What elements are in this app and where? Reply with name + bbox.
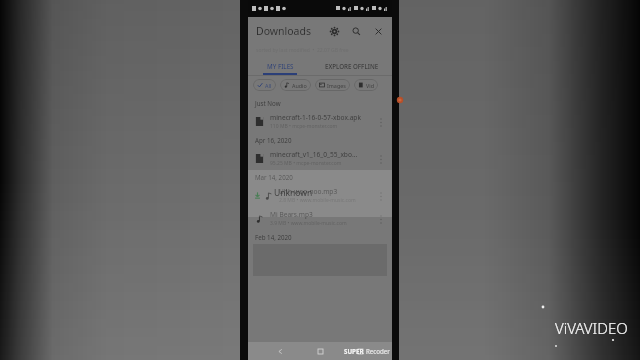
staticText: 95.25 MB • mcpe-monster.com [270, 160, 342, 167]
staticText: Downloads [256, 24, 311, 38]
staticText: Apr 16, 2020 [255, 136, 292, 144]
staticText: SUPER [344, 347, 366, 355]
button[interactable]: Audio [280, 79, 311, 91]
button[interactable]: minecraft-1-16-0-57-xbox.apk [248, 110, 392, 133]
staticText: EXPLORE OFFLINE [325, 62, 379, 70]
staticText: Feb 14, 2020 [255, 233, 292, 241]
button[interactable]: minecraft_v1_16_0_55_xbo… [248, 147, 392, 170]
button[interactable]: Close [370, 23, 386, 39]
button[interactable]: Settings [326, 23, 342, 39]
button[interactable]: Back [272, 343, 288, 359]
staticText: 3.9 MB • www.mobile-music.com [270, 220, 347, 227]
button[interactable]: Home [312, 343, 328, 359]
staticText: Vid [366, 82, 374, 89]
staticText: Uhh-woo-noo.mp3 [279, 187, 338, 196]
staticText: minecraft-1-16-0-57-xbox.apk [270, 113, 361, 122]
button[interactable]: EXPLORE OFFLINE [312, 56, 392, 75]
button[interactable]: Uhh-woo-noo.mp3 [248, 184, 392, 207]
button[interactable]: Search [348, 23, 364, 39]
staticText: Unknown [274, 187, 313, 199]
staticText: ViVAVIDEO [555, 318, 628, 338]
staticText: Just Now [255, 99, 281, 107]
staticText: Mar 14, 2020 [255, 173, 293, 181]
staticText: minecraft_v1_16_0_55_xbo… [270, 150, 358, 159]
button[interactable]: MY FILES [248, 56, 312, 75]
button[interactable]: All [253, 79, 276, 91]
staticText: Images [327, 82, 346, 89]
staticText: All [265, 82, 272, 89]
button[interactable]: Images [315, 79, 350, 91]
button[interactable]: More options [374, 212, 388, 226]
button[interactable]: Recent apps [352, 343, 368, 359]
staticText: Recoder [366, 347, 390, 355]
staticText: MY FILES [267, 62, 294, 70]
staticText: 2.8 MB • www.mobile-music.com [279, 197, 356, 204]
staticText: 110 MB • mcpe-monster.com [270, 123, 338, 130]
staticText: Audio [292, 82, 307, 89]
staticText: Mi Bears.mp3 [270, 210, 313, 219]
button[interactable]: Mi Bears.mp3 [248, 207, 392, 230]
button[interactable]: Vid [354, 79, 378, 91]
